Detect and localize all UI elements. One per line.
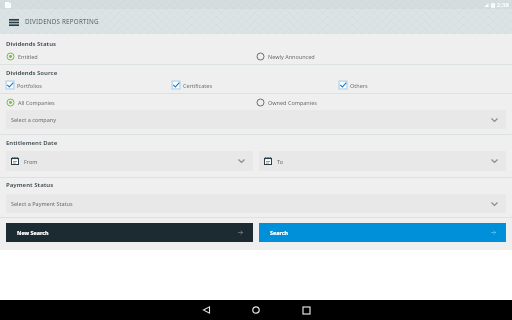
button[interactable]: Select a company bbox=[6, 110, 506, 129]
button[interactable]: Select a Payment Status bbox=[6, 194, 506, 213]
staticText: Entitlement Date bbox=[6, 139, 58, 147]
staticText: From bbox=[24, 158, 38, 165]
staticText: Payment Status bbox=[6, 181, 54, 189]
button[interactable]: Others bbox=[339, 77, 506, 93]
button[interactable]: From bbox=[6, 151, 253, 171]
staticText: Dividends Source bbox=[6, 69, 58, 77]
staticText: Owned Companies bbox=[268, 99, 317, 106]
staticText: Entitled bbox=[18, 53, 38, 60]
button[interactable]: Home bbox=[242, 300, 270, 320]
staticText: Certificates bbox=[183, 82, 213, 89]
button[interactable]: Owned Companies bbox=[256, 94, 506, 110]
staticText: Dividends Status bbox=[6, 40, 57, 48]
button[interactable]: Back bbox=[192, 300, 220, 320]
button[interactable]: Open navigation menu bbox=[6, 14, 22, 30]
staticText: Search bbox=[270, 229, 289, 236]
staticText: Select a Payment Status bbox=[11, 200, 73, 207]
button[interactable]: Search bbox=[259, 223, 506, 242]
staticText: Portfolios bbox=[17, 82, 42, 89]
button[interactable]: Portfolios bbox=[6, 77, 172, 93]
staticText: To bbox=[277, 158, 284, 165]
staticText: 2:38 bbox=[497, 1, 509, 9]
button[interactable]: Newly Announced bbox=[256, 49, 506, 64]
button[interactable]: Entitled bbox=[6, 49, 256, 64]
staticText: New Search bbox=[17, 229, 49, 236]
staticText: Newly Announced bbox=[268, 53, 315, 60]
staticText: Select a company bbox=[11, 116, 56, 123]
button[interactable]: New Search bbox=[6, 223, 253, 242]
button[interactable]: To bbox=[259, 151, 506, 171]
button[interactable]: Recent apps bbox=[292, 300, 320, 320]
button[interactable]: All Companies bbox=[6, 94, 256, 110]
button[interactable]: Certificates bbox=[172, 77, 339, 93]
staticText: Others bbox=[350, 82, 368, 89]
staticText: All Companies bbox=[18, 99, 55, 106]
staticText: DIVIDENDS REPORTING bbox=[25, 17, 99, 26]
